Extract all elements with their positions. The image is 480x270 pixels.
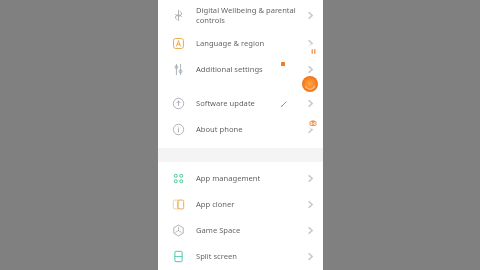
- staticText: About phone: [196, 124, 243, 134]
- staticText: Digital Wellbeing & parental controls: [196, 5, 296, 25]
- button[interactable]: Digital Wellbeing & parental controls: [158, 0, 323, 30]
- button[interactable]: Annotate: [277, 97, 290, 110]
- button[interactable]: About phone: [158, 116, 323, 142]
- button[interactable]: Stop recording: [276, 57, 289, 70]
- button[interactable]: Split screen: [158, 243, 323, 269]
- staticText: App management: [196, 173, 261, 183]
- button[interactable]: App cloner: [158, 191, 323, 217]
- button[interactable]: Screenshot: [306, 116, 319, 129]
- staticText: Split screen: [196, 251, 237, 261]
- staticText: Additional settings: [196, 64, 263, 74]
- button[interactable]: Software update: [158, 90, 323, 116]
- staticText: Software update: [196, 98, 255, 108]
- button[interactable]: Record: [299, 73, 321, 95]
- button[interactable]: Game Space: [158, 217, 323, 243]
- button[interactable]: Pause recording: [306, 44, 320, 58]
- button[interactable]: Additional settings: [158, 56, 323, 82]
- button[interactable]: Language & region: [158, 30, 323, 56]
- staticText: Language & region: [196, 38, 265, 48]
- button[interactable]: App management: [158, 165, 323, 191]
- staticText: Game Space: [196, 225, 241, 235]
- staticText: App cloner: [196, 199, 235, 209]
